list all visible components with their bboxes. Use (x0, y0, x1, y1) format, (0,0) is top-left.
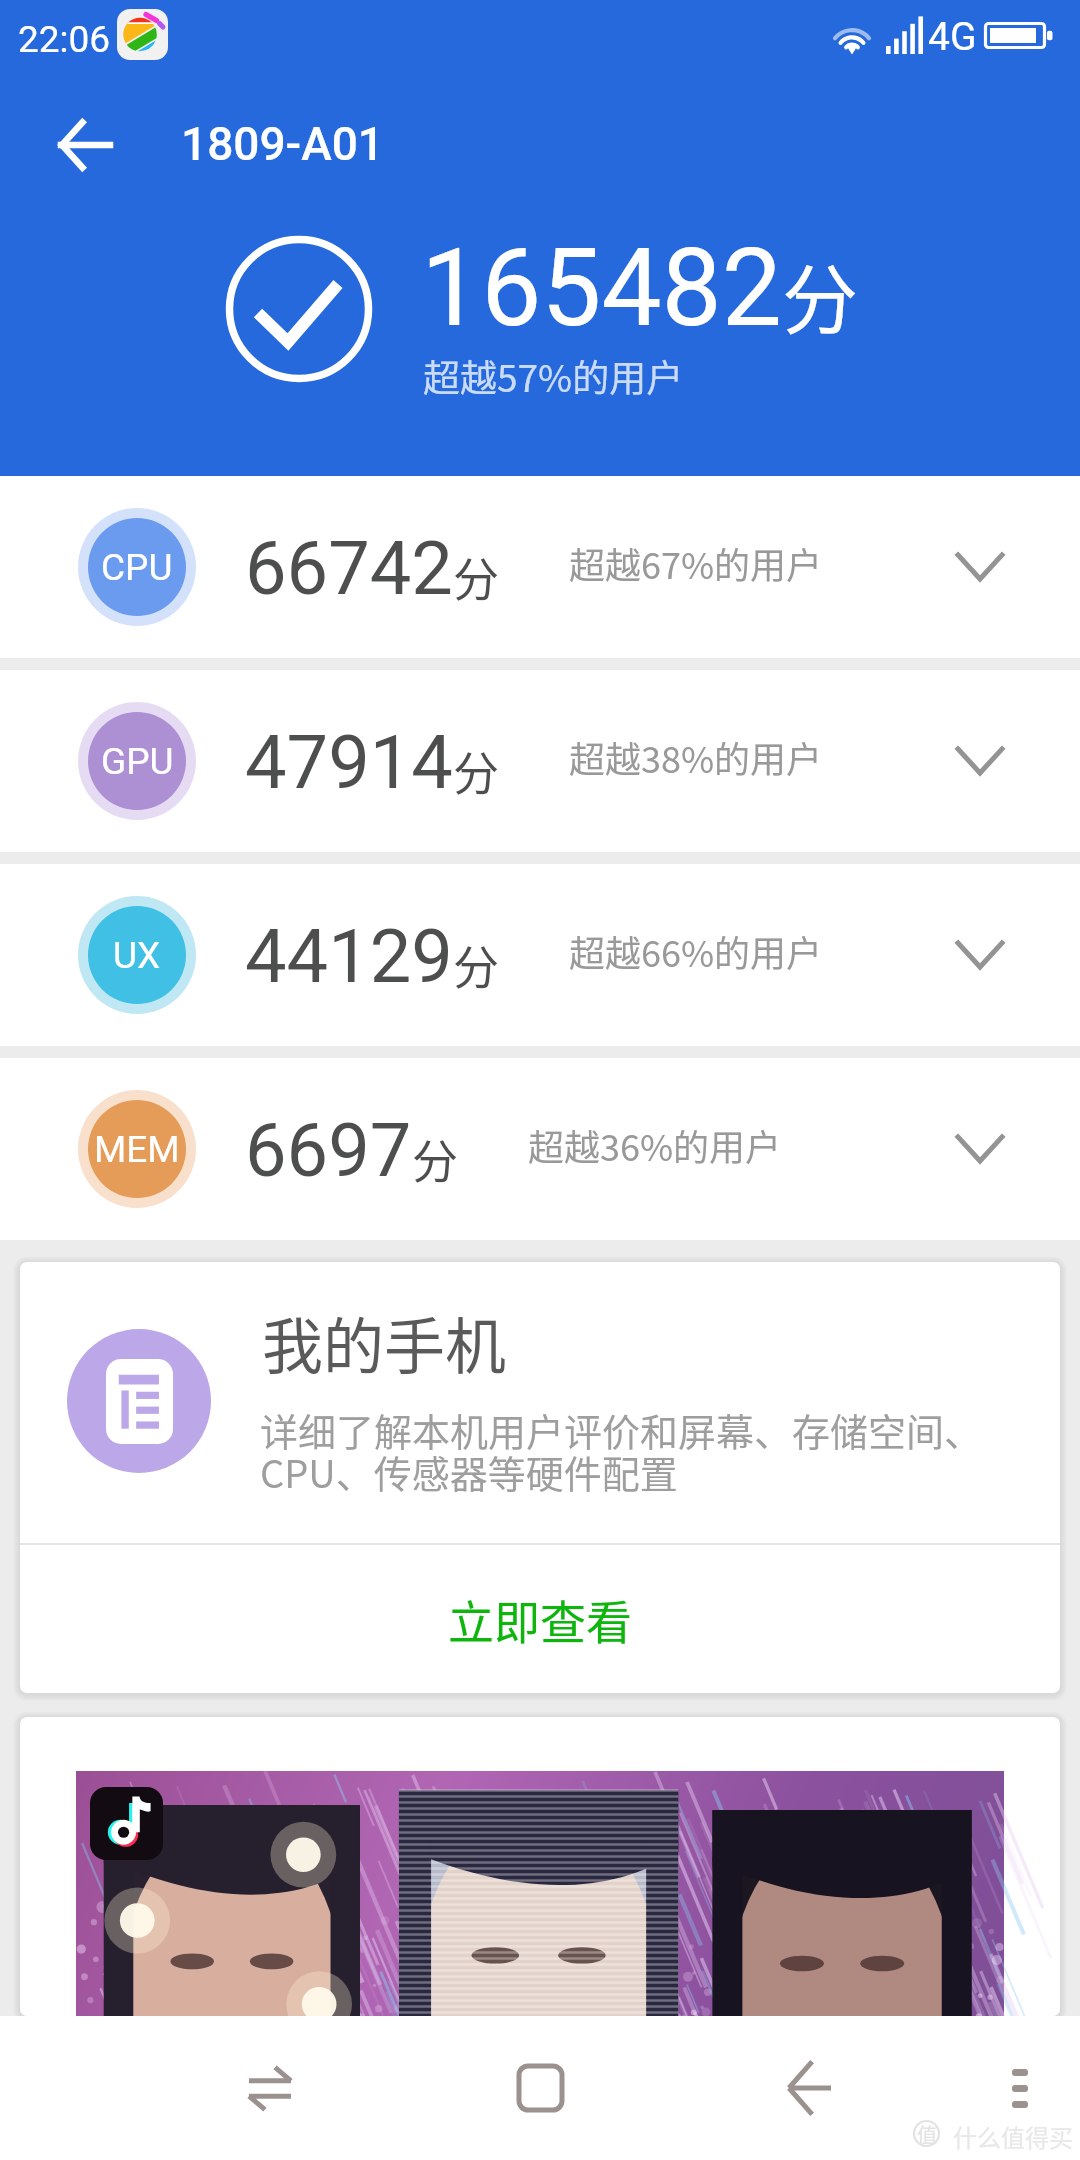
staticText: 分 (412, 1125, 458, 1192)
staticText: 立即查看 (448, 1586, 632, 1653)
button[interactable]: MEM (0, 1058, 1080, 1240)
staticText: GPU (101, 740, 174, 783)
staticText: 分 (453, 543, 499, 610)
staticText: 165482 (421, 226, 782, 351)
staticText: MEM (94, 1128, 180, 1171)
staticText: 详细了解本机用户评价和屏幕、存储空间、 CPU、传感器等硬件配置 (260, 1402, 983, 1499)
staticText: 我的手机 (262, 1298, 507, 1386)
staticText: UX (113, 934, 161, 977)
staticText: 1809-A01 (181, 117, 385, 171)
button[interactable]: Back (690, 2016, 930, 2160)
staticText: 超越67%的用户 (569, 537, 823, 589)
staticText: 超越66%的用户 (569, 925, 823, 977)
staticText: 超越38%的用户 (569, 731, 823, 783)
button[interactable]: Expand GPU details (920, 716, 1040, 806)
staticText: 超越57%的用户 (423, 349, 684, 403)
button[interactable]: Advertisement (76, 1771, 1004, 2016)
button[interactable]: Expand UX details (920, 910, 1040, 1000)
staticText: 4G (928, 14, 977, 60)
staticText: 22:06 (18, 18, 111, 61)
staticText: 分 (453, 931, 499, 998)
button[interactable]: Expand CPU details (920, 522, 1040, 612)
staticText: 44129 (245, 913, 453, 1000)
staticText: 分 (782, 240, 858, 350)
button[interactable]: UX (0, 864, 1080, 1046)
staticText: 6697 (245, 1107, 412, 1194)
staticText: CPU (101, 546, 173, 589)
button[interactable]: 我的手机 (20, 1262, 1060, 1543)
button[interactable]: Home (420, 2016, 660, 2160)
button[interactable]: 立即查看 (20, 1545, 1060, 1693)
button[interactable]: Switch apps (150, 2016, 390, 2160)
button[interactable]: Menu (960, 2016, 1080, 2160)
staticText: 分 (453, 737, 499, 804)
staticText: 值 (917, 2120, 937, 2147)
staticText: 什么值得买 (953, 2119, 1073, 2154)
button[interactable]: Expand MEM details (920, 1104, 1040, 1194)
staticText: 超越36%的用户 (528, 1119, 782, 1171)
staticText: 47914 (245, 719, 453, 806)
button[interactable]: Back (24, 90, 144, 200)
staticText: 66742 (245, 525, 453, 612)
button[interactable]: GPU (0, 670, 1080, 852)
button[interactable]: CPU (0, 476, 1080, 658)
